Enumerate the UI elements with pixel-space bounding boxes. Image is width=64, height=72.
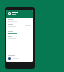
button[interactable]: Profile avatar [8,12,11,15]
button[interactable]: Primary action [8,57,11,60]
